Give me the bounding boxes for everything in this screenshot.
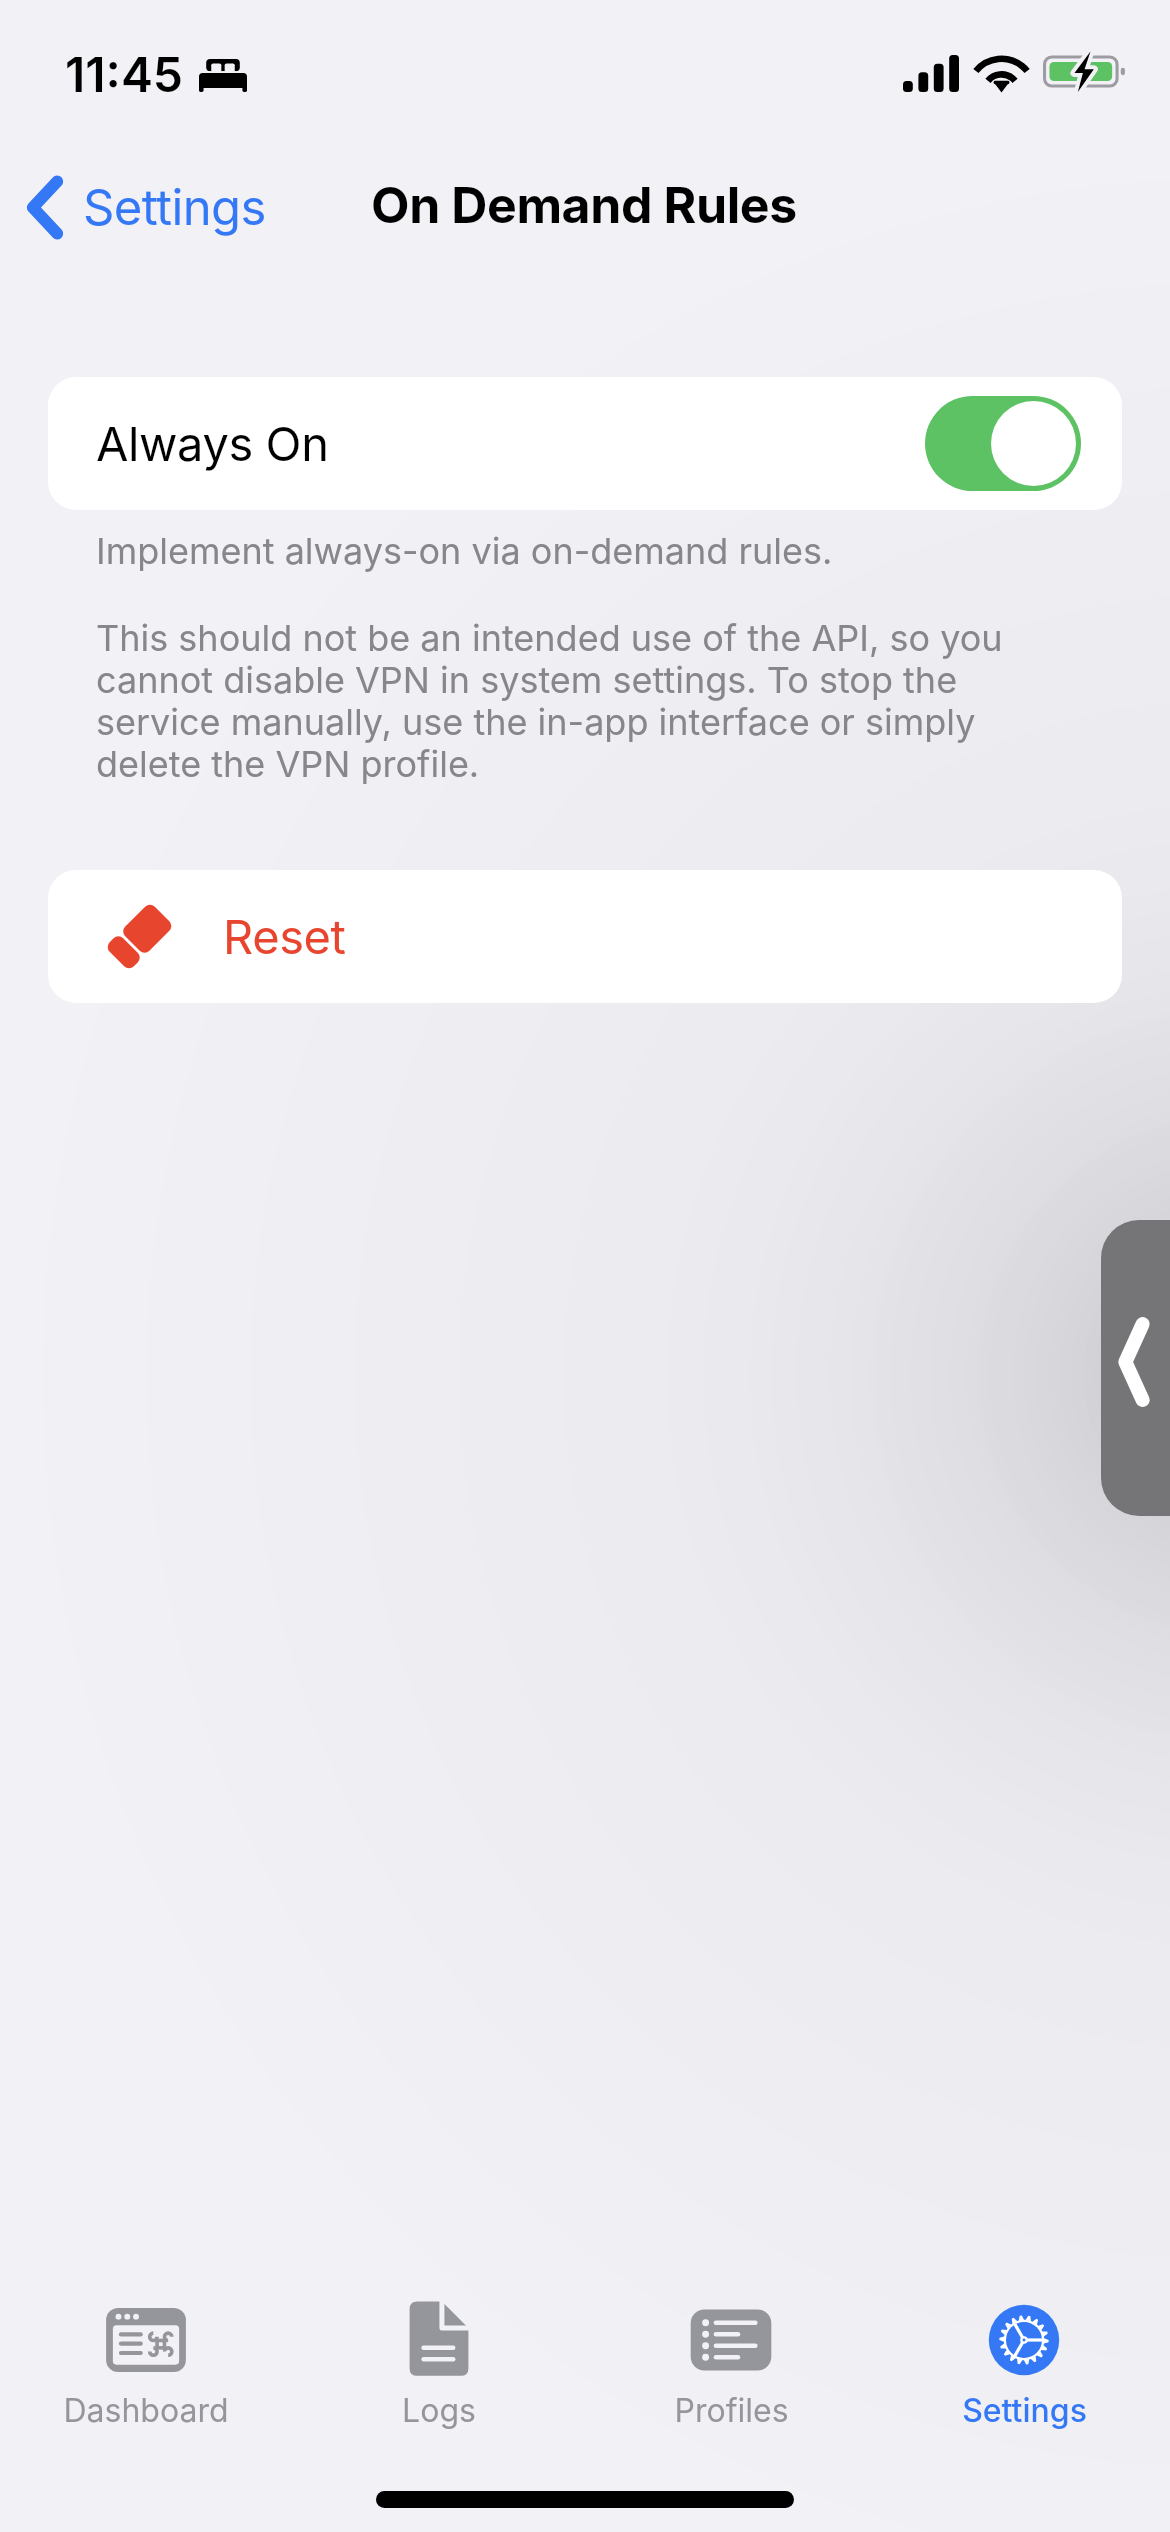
staticText: 11:45 — [65, 45, 184, 103]
button[interactable]: Always On toggle — [925, 396, 1081, 491]
button[interactable]: Dashboard — [0, 2308, 292, 2430]
button[interactable]: Settings — [878, 2308, 1170, 2430]
button[interactable]: Reset — [48, 870, 1122, 1003]
button[interactable]: Settings — [22, 175, 266, 240]
staticText: Settings — [962, 2391, 1087, 2430]
staticText: This should not be an intended use of th… — [96, 616, 1026, 785]
staticText: Dashboard — [63, 2391, 229, 2430]
staticText: Always On — [96, 415, 329, 472]
staticText: Reset — [223, 908, 346, 965]
button[interactable]: Logs — [293, 2308, 585, 2430]
button[interactable]: Always On — [48, 377, 1122, 510]
button[interactable]: Open side panel — [1101, 1220, 1170, 1516]
button[interactable]: Profiles — [585, 2308, 877, 2430]
staticText: Settings — [83, 178, 266, 237]
staticText: Profiles — [674, 2391, 789, 2430]
staticText: Logs — [402, 2391, 476, 2430]
staticText: Implement always-on via on-demand rules. — [96, 529, 833, 573]
staticText: On Demand Rules — [371, 175, 797, 235]
